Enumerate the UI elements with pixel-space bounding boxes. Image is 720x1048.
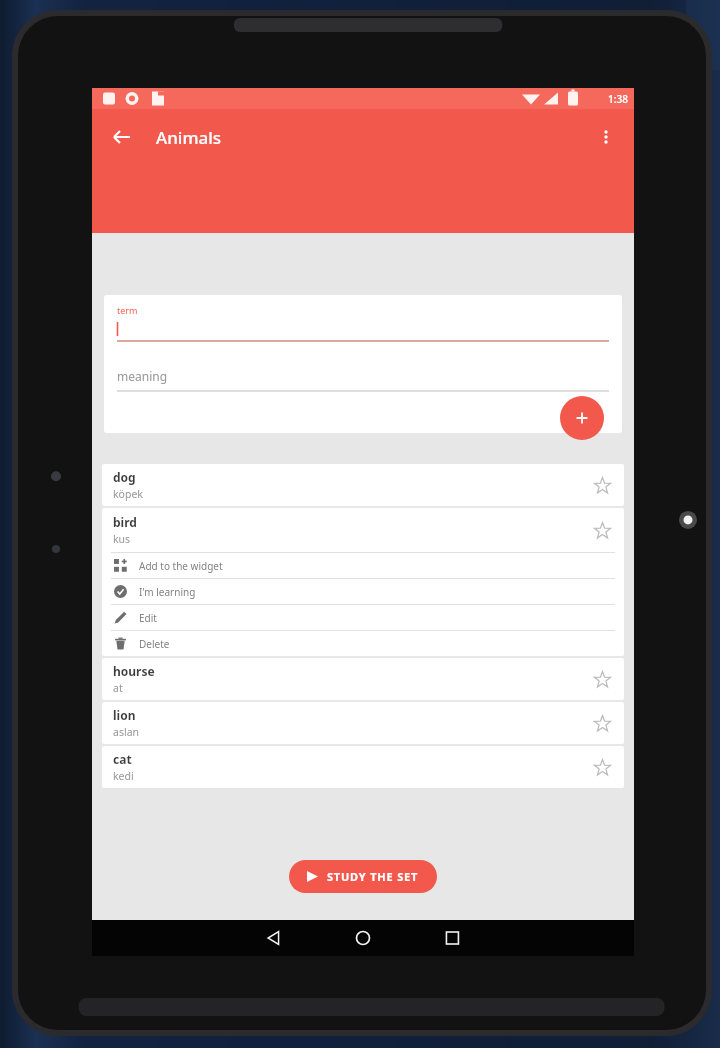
button[interactable]: Delete	[102, 631, 624, 656]
button[interactable]: Favourite	[588, 753, 616, 781]
staticText: cat	[113, 751, 132, 767]
staticText: lion	[113, 707, 136, 723]
button[interactable]: Favourite	[588, 665, 616, 693]
button[interactable]: Back	[100, 115, 144, 159]
button[interactable]: Add to the widget	[102, 553, 624, 578]
staticText: STUDY THE SET	[327, 869, 419, 884]
staticText: bird	[113, 514, 137, 530]
staticText: Delete	[139, 637, 170, 651]
button[interactable]: bird	[102, 508, 624, 552]
staticText: term	[117, 304, 138, 316]
button[interactable]: Add word	[560, 396, 604, 440]
button[interactable]: More options	[584, 115, 628, 159]
staticText: köpek	[113, 487, 143, 501]
staticText: aslan	[113, 725, 140, 739]
button[interactable]: STUDY THE SET	[289, 860, 437, 893]
staticText: meaning	[117, 368, 168, 384]
staticText: 1:38	[608, 92, 628, 106]
staticText: at	[113, 681, 123, 695]
staticText: kus	[113, 532, 131, 546]
button[interactable]: I'm learning	[102, 579, 624, 604]
staticText: Animals	[156, 126, 222, 149]
button[interactable]: Favourite	[588, 516, 616, 544]
staticText: I'm learning	[139, 585, 196, 599]
button[interactable]: Favourite	[588, 709, 616, 737]
button[interactable]: dog	[102, 464, 624, 506]
button[interactable]: Edit	[102, 605, 624, 630]
button[interactable]: hourse	[102, 658, 624, 700]
button[interactable]: lion	[102, 702, 624, 744]
button[interactable]: cat	[102, 746, 624, 788]
staticText: hourse	[113, 663, 155, 679]
button[interactable]: Favourite	[588, 471, 616, 499]
staticText: Add to the widget	[139, 559, 223, 573]
staticText: Edit	[139, 611, 157, 625]
staticText: kedi	[113, 769, 134, 783]
staticText: dog	[113, 469, 136, 485]
